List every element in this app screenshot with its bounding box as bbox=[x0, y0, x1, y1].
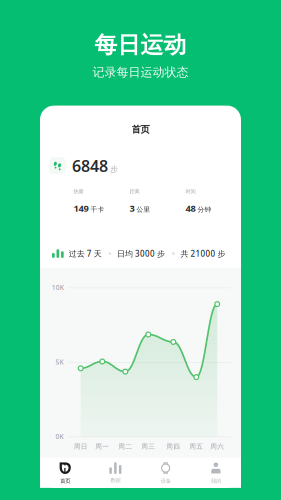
staticText: 0K bbox=[55, 432, 63, 441]
staticText: 周三 bbox=[141, 442, 155, 451]
staticText: 周一 bbox=[95, 442, 109, 451]
staticText: 公里 bbox=[136, 205, 150, 213]
staticText: 周日 bbox=[74, 442, 88, 451]
button[interactable]: 我的 bbox=[191, 458, 241, 488]
staticText: 首页 bbox=[131, 124, 149, 135]
staticText: 过去 7 天 bbox=[69, 248, 102, 259]
staticText: 距离 bbox=[129, 188, 139, 195]
staticText: 分钟 bbox=[197, 205, 211, 213]
button[interactable]: 数据 bbox=[90, 458, 140, 488]
staticText: 周六 bbox=[210, 442, 224, 451]
staticText: 热量 bbox=[73, 188, 83, 195]
button[interactable]: 首页 bbox=[40, 458, 90, 488]
staticText: 周五 bbox=[189, 442, 203, 451]
staticText: 3 bbox=[129, 202, 134, 214]
staticText: 周四 bbox=[166, 442, 180, 451]
staticText: 我的 bbox=[211, 478, 221, 484]
staticText: 步 bbox=[110, 164, 118, 174]
staticText: 千卡 bbox=[90, 205, 104, 213]
staticText: 10K bbox=[52, 283, 64, 292]
staticText: 周二 bbox=[118, 442, 132, 451]
button[interactable]: 设备 bbox=[140, 458, 191, 488]
staticText: 时间 bbox=[185, 188, 195, 195]
staticText: 每日运动 bbox=[94, 31, 186, 59]
staticText: 6848 bbox=[72, 155, 108, 176]
staticText: 记录每日运动状态 bbox=[92, 65, 188, 79]
staticText: 设备 bbox=[161, 478, 171, 484]
staticText: 共 21000 步 bbox=[180, 248, 225, 259]
staticText: 149 bbox=[73, 202, 88, 214]
staticText: 5K bbox=[55, 357, 63, 366]
staticText: 数据 bbox=[110, 477, 120, 483]
staticText: 日均 3000 步 bbox=[117, 248, 165, 259]
staticText: 首页 bbox=[60, 478, 70, 484]
staticText: 48 bbox=[185, 202, 195, 214]
